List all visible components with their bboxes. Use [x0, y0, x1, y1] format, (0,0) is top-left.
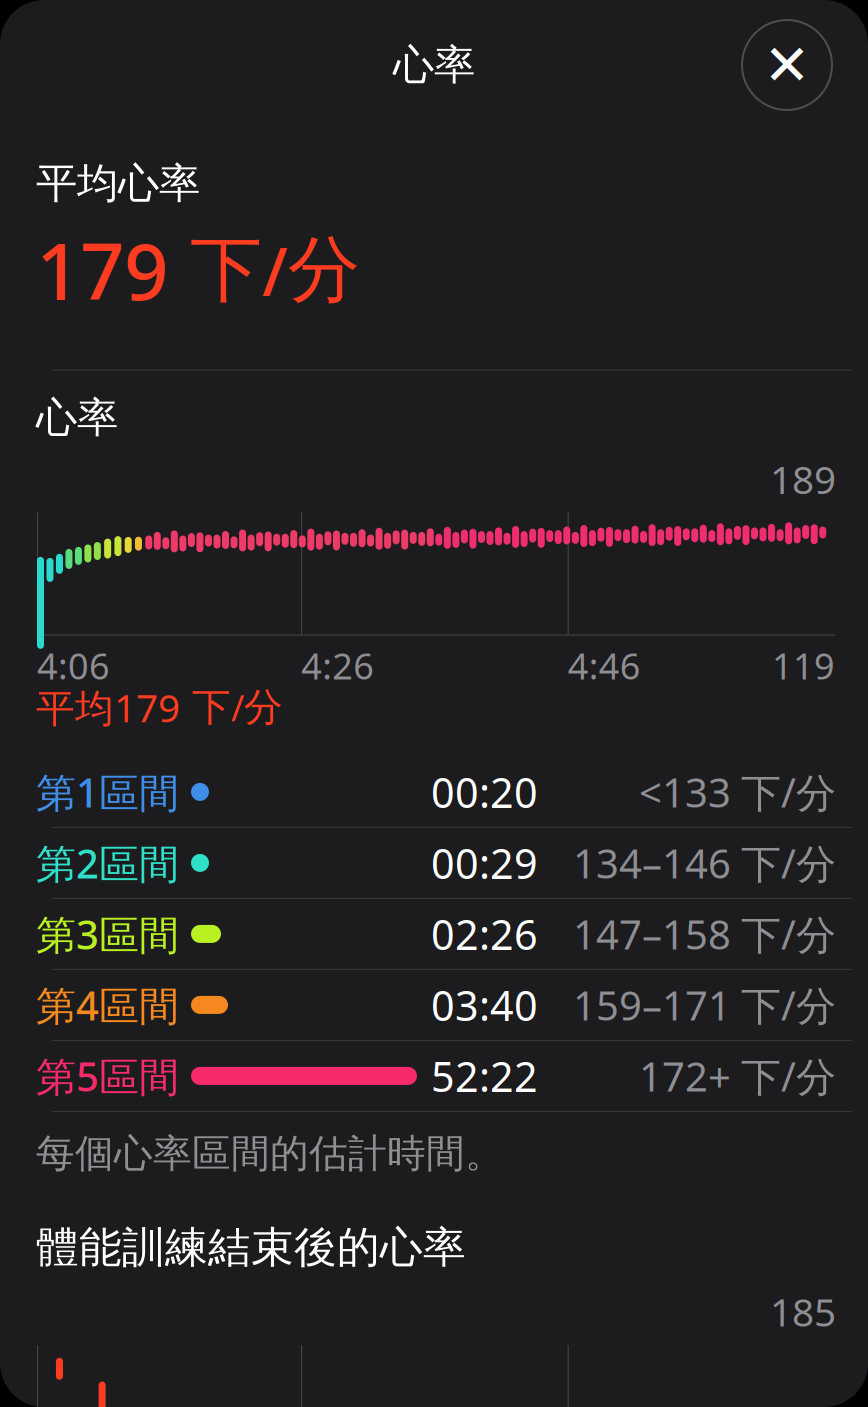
staticText: 平均179 [36, 682, 180, 733]
staticText: 134–146 下/分 [573, 836, 836, 889]
staticText: 119 [772, 642, 835, 689]
staticText: 179 [36, 219, 168, 321]
staticText: / [262, 226, 288, 314]
staticText: 147–158 下/分 [573, 907, 836, 960]
staticText: 00:29 [431, 835, 538, 890]
staticText: 第5區間 [36, 1049, 179, 1102]
staticText: 分 [244, 683, 283, 731]
button[interactable]: Close [742, 20, 832, 110]
button[interactable]: 第2區間 [0, 828, 868, 899]
button[interactable]: 第5區間 [0, 1041, 868, 1112]
staticText: 分 [288, 226, 360, 314]
staticText: 第2區間 [36, 836, 179, 889]
staticText: <133 下/分 [639, 765, 836, 818]
staticText: 185 [770, 1286, 836, 1337]
staticText: 第1區間 [36, 765, 179, 818]
staticText: 4:26 [301, 642, 374, 689]
button[interactable]: 第3區間 [0, 899, 868, 970]
staticText: 第3區間 [36, 907, 179, 960]
staticText: 每個心率區間的估計時間。 [36, 1130, 504, 1177]
staticText: 4:06 [37, 642, 110, 689]
staticText: 52:22 [431, 1048, 538, 1103]
staticText: 第4區間 [36, 978, 179, 1031]
staticText: 下 [168, 226, 262, 314]
staticText: 03:40 [431, 977, 538, 1032]
staticText: ✕ [763, 33, 810, 97]
staticText: 體能訓練結束後的心率 [36, 1221, 466, 1274]
staticText: / [231, 683, 244, 731]
staticText: 172+ 下/分 [639, 1049, 836, 1102]
staticText: 02:26 [431, 906, 538, 961]
staticText: 159–171 下/分 [573, 978, 836, 1031]
staticText: 下 [180, 683, 231, 731]
staticText: 心率 [36, 392, 118, 443]
button[interactable]: 第1區間 [0, 757, 868, 828]
staticText: 189 [770, 453, 836, 504]
staticText: 00:20 [431, 764, 538, 819]
staticText: 平均心率 [36, 158, 200, 209]
staticText: 4:46 [568, 642, 641, 689]
button[interactable]: 第4區間 [0, 970, 868, 1041]
staticText: 心率 [393, 40, 475, 90]
